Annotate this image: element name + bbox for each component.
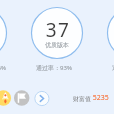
staticText: 财富值 <box>73 95 91 103</box>
staticText: 通过率：91% <box>112 64 114 72</box>
button[interactable]: Flag <box>14 90 30 106</box>
staticText: 5235 <box>91 93 109 103</box>
button[interactable]: Boost <box>0 90 11 106</box>
staticText: 通过率：96% <box>0 64 6 72</box>
button[interactable]: 财富值 <box>73 93 109 103</box>
staticText: 37 <box>32 17 83 43</box>
button[interactable]: Next <box>34 91 50 107</box>
staticText: 通过率：93% <box>24 64 84 72</box>
staticText: 优质版本 <box>31 41 83 49</box>
button[interactable]: 37 <box>31 7 83 59</box>
